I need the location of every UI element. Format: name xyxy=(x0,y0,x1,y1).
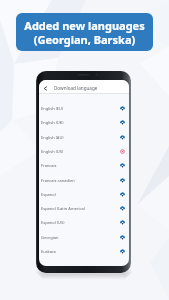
staticText: Georgian xyxy=(41,235,59,240)
staticText: Francais xyxy=(41,163,57,168)
other: Download xyxy=(120,163,125,168)
staticText: Espanol xyxy=(41,192,56,197)
button[interactable]: English (UK) xyxy=(39,115,129,129)
other: Download xyxy=(120,106,125,111)
button[interactable]: Espanol xyxy=(39,187,129,201)
staticText: English (UK) xyxy=(41,120,64,125)
staticText: Espanol (Latin America) xyxy=(41,206,85,211)
other: Download xyxy=(120,235,125,240)
button[interactable]: Added new languages (Georgian, Barska) xyxy=(16,13,153,51)
button[interactable]: Georgian xyxy=(39,230,129,244)
staticText: English (AU) xyxy=(41,135,64,140)
other: Download xyxy=(120,220,125,225)
staticText: English (US) xyxy=(41,149,64,154)
button[interactable]: English (AU) xyxy=(39,130,129,144)
button[interactable]: Espanol (Latin America) xyxy=(39,201,129,215)
button[interactable]: English (EU) xyxy=(39,101,129,115)
other: Download xyxy=(120,135,125,140)
other: Download xyxy=(120,192,125,197)
staticText: Added new languages (Georgian, Barska) xyxy=(24,18,145,47)
staticText: English (EU) xyxy=(41,106,64,111)
button[interactable]: Back xyxy=(39,80,129,96)
button[interactable]: English (US) xyxy=(39,144,129,158)
button[interactable]: Espanol (US) xyxy=(39,215,129,229)
staticText: Espanol (US) xyxy=(41,220,65,225)
button[interactable]: Euskara xyxy=(39,244,129,258)
other: Downloading xyxy=(120,149,125,154)
other: Download xyxy=(120,206,125,211)
button[interactable]: Francais xyxy=(39,158,129,172)
button[interactable]: Francais canadien xyxy=(39,173,129,187)
other: Download xyxy=(120,120,125,125)
staticText: Euskara xyxy=(41,249,56,254)
staticText: Download language xyxy=(54,85,98,91)
other: Back xyxy=(42,85,49,92)
other: Download xyxy=(120,249,125,254)
staticText: Francais canadien xyxy=(41,178,75,183)
other: Download xyxy=(120,178,125,183)
